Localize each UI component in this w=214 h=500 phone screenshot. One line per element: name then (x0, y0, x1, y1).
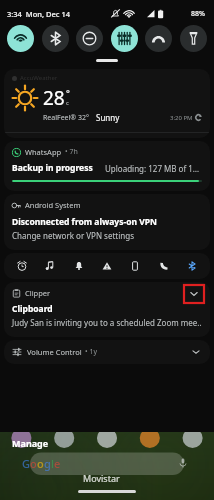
staticText: Volume Control (27, 347, 82, 357)
button[interactable]: Flashlight (180, 25, 207, 52)
staticText: Android System (25, 200, 81, 210)
staticText: 3:34 Mon, Dec 14 (7, 9, 70, 19)
button[interactable]: Battery saver (145, 25, 172, 52)
staticText: Disconnected from always-on VPN (12, 216, 157, 228)
staticText: Clipper (25, 288, 51, 298)
staticText: Sunny (96, 112, 120, 123)
button[interactable]: Bluetooth (42, 25, 69, 52)
staticText: Judy San is inviting you to a scheduled … (12, 317, 202, 328)
button[interactable]: Bluetooth (182, 256, 202, 276)
button[interactable]: Alarm (12, 256, 32, 276)
staticText: 3:20 PM (170, 114, 193, 122)
staticText: g (44, 456, 51, 471)
staticText: o (30, 456, 37, 471)
staticText: • 1y (85, 347, 98, 357)
staticText: Clipboard (12, 303, 53, 315)
staticText: 28 (43, 85, 65, 111)
button[interactable]: WhatsApp (4, 141, 210, 191)
staticText: Uploading: 127 MB of 127... (105, 163, 202, 174)
staticText: Change network or VPN settings (12, 230, 134, 241)
button[interactable]: Wi-Fi (7, 25, 34, 52)
button[interactable]: Expand notification (184, 285, 204, 303)
staticText: WhatsApp (25, 147, 62, 157)
staticText: ° (66, 87, 70, 99)
staticText: e (54, 456, 61, 471)
button[interactable]: Call (154, 256, 174, 276)
button[interactable] (96, 59, 118, 62)
staticText: l (51, 456, 54, 471)
button[interactable]: Equalizer (111, 25, 138, 52)
button[interactable]: AccuWeather (4, 69, 210, 132)
button[interactable]: Android System (4, 194, 210, 250)
staticText: o (37, 456, 44, 471)
staticText: c (66, 99, 69, 107)
button[interactable]: Notifications (69, 256, 89, 276)
staticText: AccuWeather (20, 74, 58, 82)
staticText: Backup in progress (12, 162, 93, 174)
button[interactable]: Device (125, 256, 145, 276)
button[interactable]: Warning (97, 256, 117, 276)
button[interactable]: Music (40, 256, 60, 276)
button[interactable]: Manage (12, 437, 49, 449)
staticText: RealFeel® 32° (43, 113, 90, 123)
button[interactable]: Volume Control (4, 340, 210, 364)
staticText: G (22, 456, 30, 471)
staticText: • 7h (65, 147, 78, 157)
button[interactable]: Expand (190, 346, 202, 358)
button[interactable]: Do not disturb (76, 25, 103, 52)
staticText: Movistar (83, 472, 120, 484)
staticText: 88% (191, 9, 205, 19)
button[interactable]: Clipper (4, 282, 210, 337)
